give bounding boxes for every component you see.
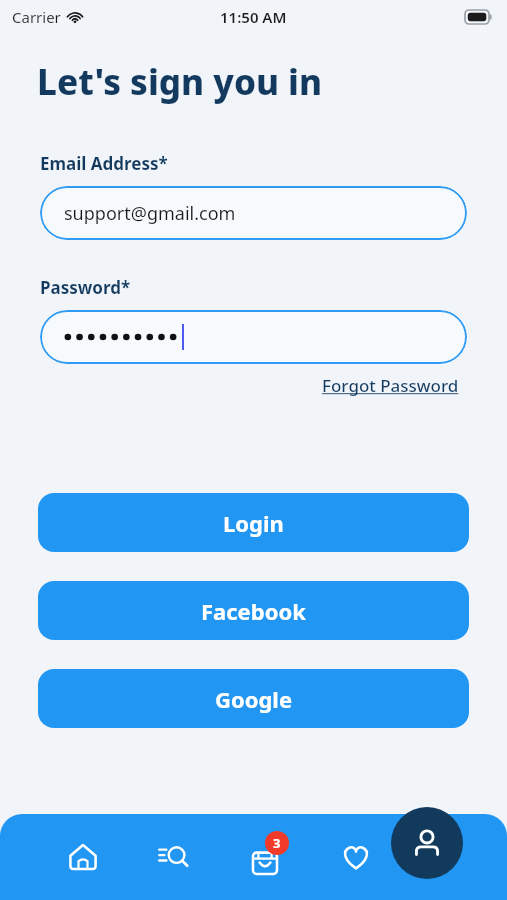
button[interactable]: Home	[57, 831, 109, 883]
button[interactable]: support@gmail.com	[40, 186, 467, 240]
button[interactable]: Favorites	[330, 831, 382, 883]
staticText: Login	[223, 508, 284, 538]
button[interactable]: Profile	[391, 807, 463, 879]
staticText: 3	[273, 834, 281, 852]
staticText: Password*	[40, 276, 131, 299]
staticText: support@gmail.com	[64, 201, 236, 226]
staticText: Facebook	[201, 596, 306, 626]
staticText: Carrier	[12, 7, 61, 27]
staticText: Google	[215, 684, 293, 714]
button[interactable]: Forgot Password	[322, 374, 459, 397]
staticText: 11:50 AM	[220, 7, 287, 27]
staticText: Email Address*	[40, 152, 168, 175]
button[interactable]	[40, 310, 467, 364]
button[interactable]: Google	[38, 669, 469, 728]
button[interactable]: Login	[38, 493, 469, 552]
button[interactable]: Search	[148, 831, 200, 883]
staticText: Let's sign you in	[37, 58, 323, 106]
button[interactable]: Cart, 3 items	[239, 831, 291, 883]
button[interactable]: Facebook	[38, 581, 469, 640]
